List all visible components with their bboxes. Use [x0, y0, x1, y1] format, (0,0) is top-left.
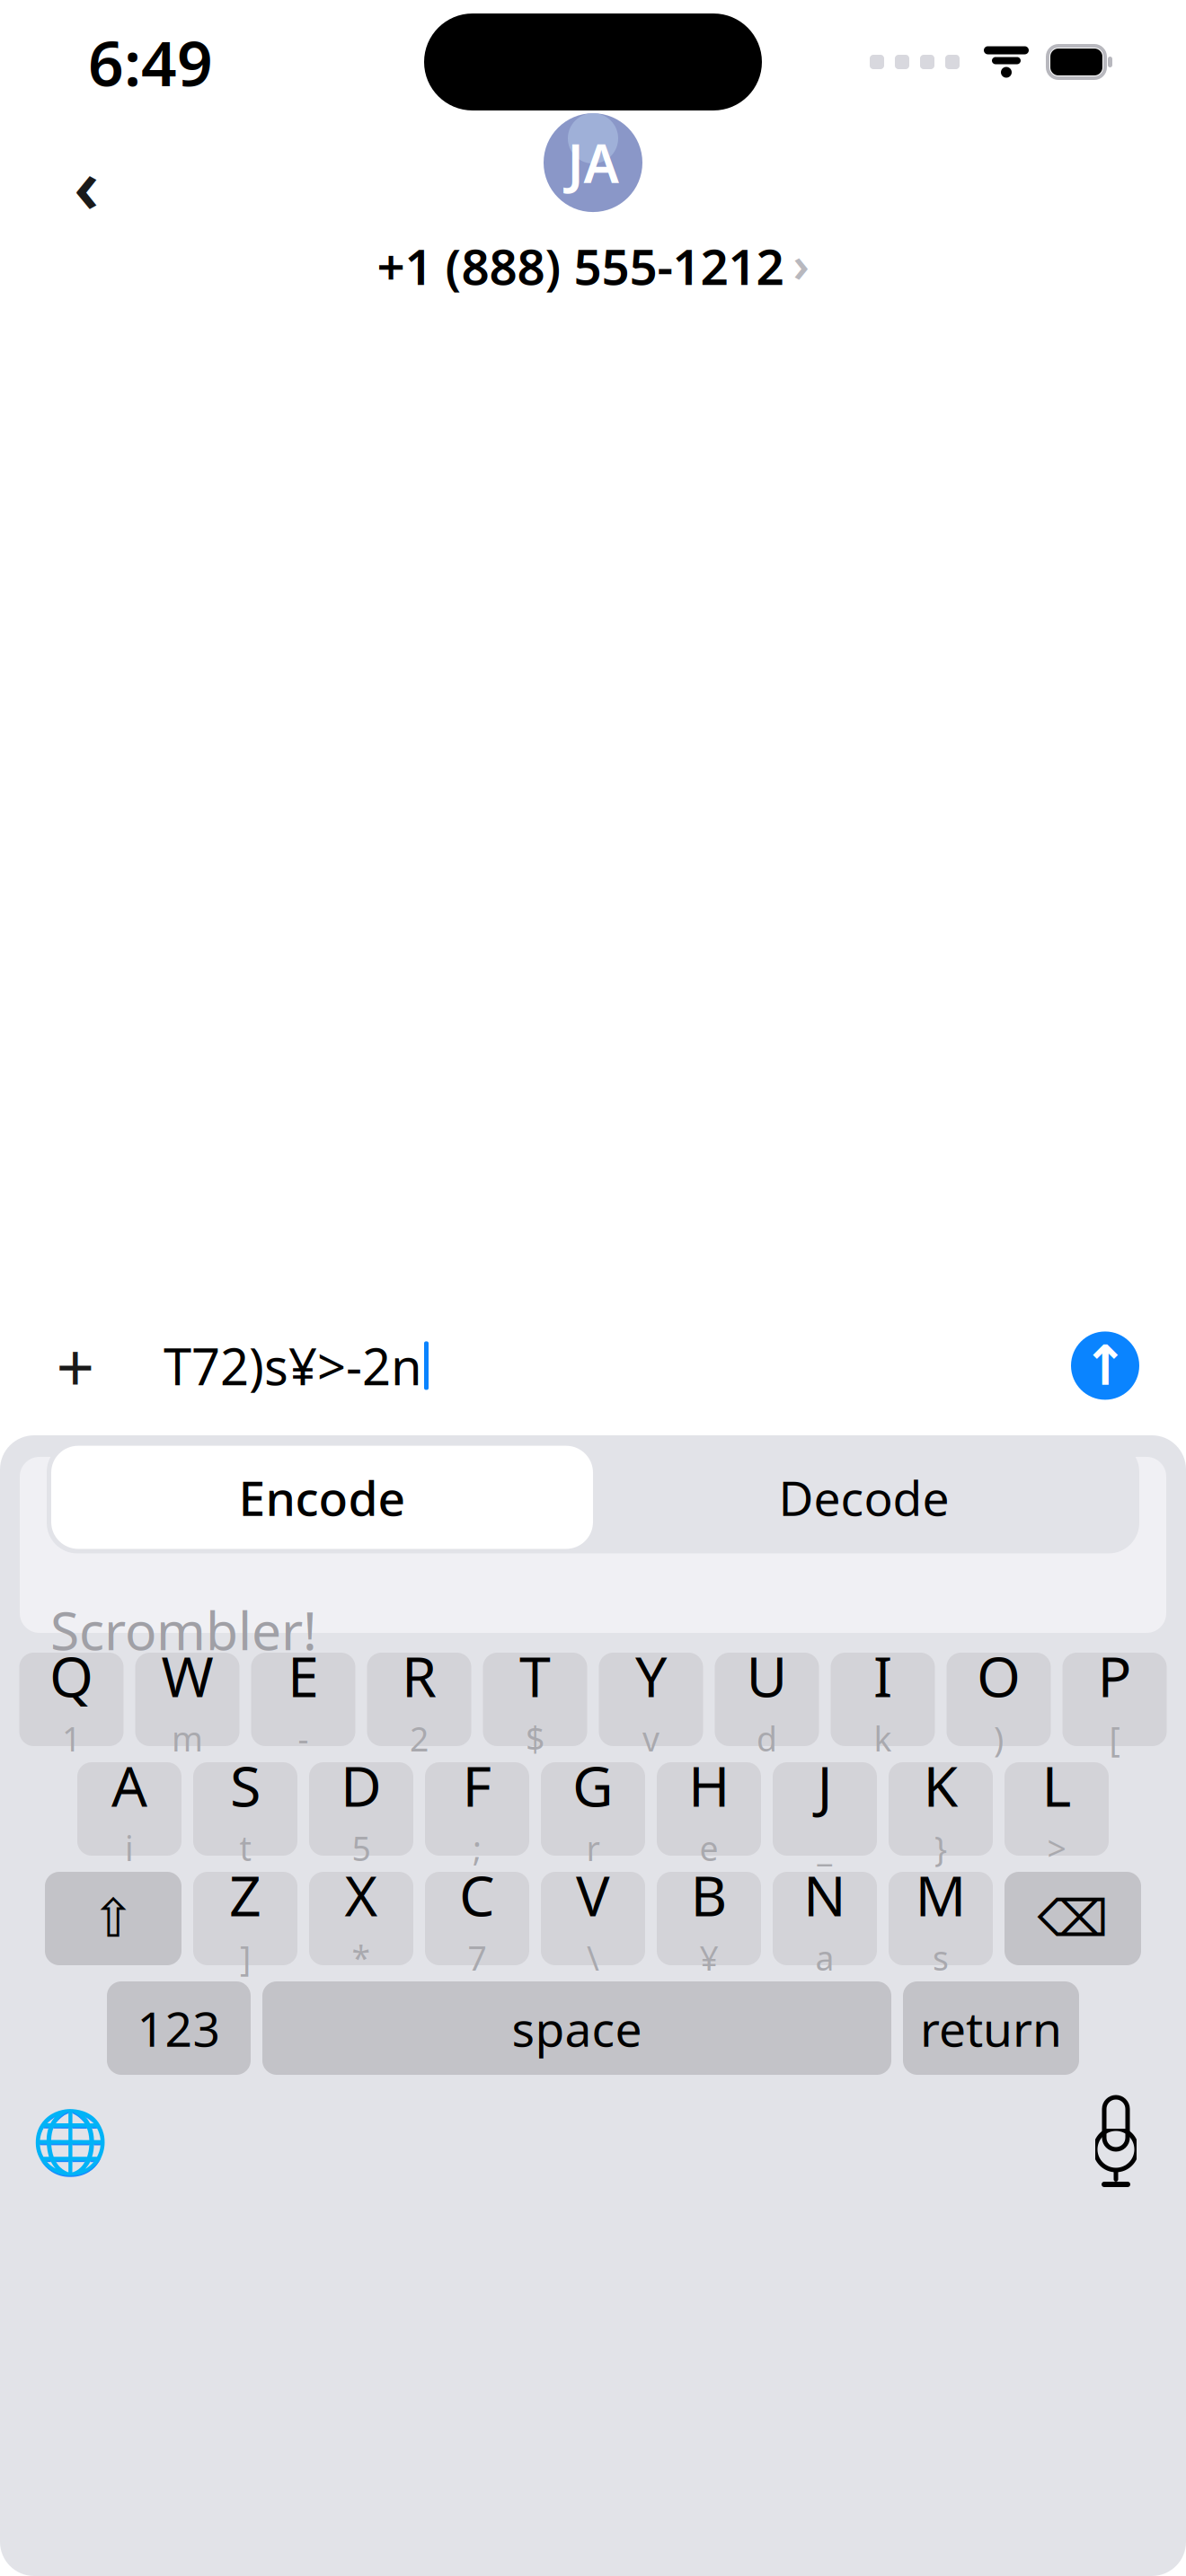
button[interactable]: A	[77, 1762, 181, 1856]
button[interactable]: R	[367, 1653, 471, 1746]
button[interactable]: Next keyboard	[27, 2099, 113, 2185]
staticText: r	[586, 1826, 600, 1870]
button[interactable]: Z	[193, 1872, 297, 1965]
button[interactable]: Q	[19, 1653, 124, 1746]
button[interactable]: Dictate	[1073, 2099, 1159, 2185]
button[interactable]: Space	[262, 1981, 891, 2075]
button[interactable]: Encode	[51, 1446, 593, 1549]
staticText: P	[1097, 1638, 1132, 1713]
staticText: ⇧	[91, 1889, 135, 1948]
staticText: Scrombler!	[50, 1595, 317, 1665]
button[interactable]: C	[425, 1872, 529, 1965]
button[interactable]: I	[831, 1653, 935, 1746]
staticText: m	[172, 1716, 203, 1761]
staticText: Q	[49, 1638, 93, 1713]
staticText: ¥	[699, 1935, 718, 1980]
staticText: _	[817, 1826, 832, 1870]
button[interactable]: L	[1005, 1762, 1109, 1856]
staticText: -	[298, 1716, 309, 1761]
staticText: d	[757, 1716, 777, 1761]
button[interactable]: S	[193, 1762, 297, 1856]
staticText: space	[512, 1996, 642, 2060]
staticText: >	[1047, 1826, 1066, 1870]
staticText: C	[459, 1857, 495, 1932]
button[interactable]: Shift	[45, 1872, 181, 1965]
button[interactable]: X	[309, 1872, 413, 1965]
button[interactable]: T	[483, 1653, 587, 1746]
staticText: ›	[793, 232, 809, 295]
staticText: $	[526, 1716, 544, 1761]
staticText: s	[933, 1935, 949, 1980]
button[interactable]: V	[541, 1872, 645, 1965]
staticText: ⌫	[1037, 1890, 1108, 1947]
button[interactable]: Y	[599, 1653, 703, 1746]
staticText: Decode	[779, 1465, 949, 1529]
staticText: I	[873, 1638, 892, 1713]
button[interactable]: Delete	[1005, 1872, 1141, 1965]
button[interactable]: Decode	[593, 1446, 1135, 1549]
staticText: E	[288, 1638, 319, 1713]
button[interactable]: M	[889, 1872, 993, 1965]
staticText: +	[56, 1321, 95, 1410]
staticText: Z	[229, 1857, 261, 1932]
staticText: 🌐	[31, 2107, 109, 2178]
staticText: G	[572, 1748, 614, 1822]
button[interactable]: Back	[41, 142, 131, 232]
staticText: H	[688, 1748, 730, 1822]
staticText: ↑	[1082, 1334, 1128, 1397]
button[interactable]: P	[1062, 1653, 1167, 1746]
button[interactable]: F	[425, 1762, 529, 1856]
staticText: [	[1109, 1716, 1120, 1761]
staticText: O	[977, 1638, 1021, 1713]
staticText: 123	[137, 1996, 221, 2060]
staticText: V	[576, 1857, 610, 1932]
button[interactable]: H	[657, 1762, 761, 1856]
button[interactable]: J	[773, 1762, 877, 1856]
button[interactable]: U	[715, 1653, 819, 1746]
staticText: )	[994, 1716, 1004, 1761]
button[interactable]: N	[773, 1872, 877, 1965]
staticText: e	[699, 1826, 718, 1870]
button[interactable]: G	[541, 1762, 645, 1856]
staticText: X	[345, 1857, 378, 1932]
button[interactable]: K	[889, 1762, 993, 1856]
staticText: S	[230, 1748, 261, 1822]
button[interactable]: O	[947, 1653, 1051, 1746]
staticText: K	[923, 1748, 958, 1822]
staticText: 7	[468, 1935, 487, 1980]
staticText: 2	[410, 1716, 429, 1761]
staticText: i	[125, 1826, 134, 1870]
staticText: A	[111, 1748, 147, 1822]
staticText: \	[587, 1935, 599, 1980]
staticText: L	[1042, 1748, 1071, 1822]
button[interactable]: Numbers	[107, 1981, 251, 2075]
staticText: ]	[240, 1935, 251, 1980]
button[interactable]: Send	[1071, 1331, 1139, 1400]
staticText: N	[803, 1857, 846, 1932]
staticText: W	[161, 1638, 213, 1713]
staticText: Y	[635, 1638, 667, 1713]
staticText: F	[462, 1748, 492, 1822]
staticText: T72)s¥>-2n	[164, 1332, 422, 1399]
staticText: }	[934, 1826, 947, 1870]
staticText: J	[817, 1748, 832, 1822]
button[interactable]: E	[251, 1653, 355, 1746]
staticText: v	[642, 1716, 659, 1761]
staticText: B	[690, 1857, 727, 1932]
staticText: 5	[352, 1826, 371, 1870]
button[interactable]: Return	[903, 1981, 1079, 2075]
staticText: 6:49	[88, 21, 213, 103]
staticText: k	[874, 1716, 892, 1761]
button[interactable]: +1 (888) 555-1212	[343, 217, 843, 314]
staticText: T	[519, 1638, 551, 1713]
staticText: U	[746, 1638, 788, 1713]
staticText: R	[402, 1638, 437, 1713]
staticText: 1	[62, 1716, 81, 1761]
button[interactable]: Attach	[38, 1321, 113, 1410]
staticText: JA	[567, 128, 619, 198]
button[interactable]: B	[657, 1872, 761, 1965]
button[interactable]: W	[135, 1653, 239, 1746]
staticText: M	[915, 1857, 966, 1932]
button[interactable]: D	[309, 1762, 413, 1856]
staticText: a	[815, 1935, 834, 1980]
